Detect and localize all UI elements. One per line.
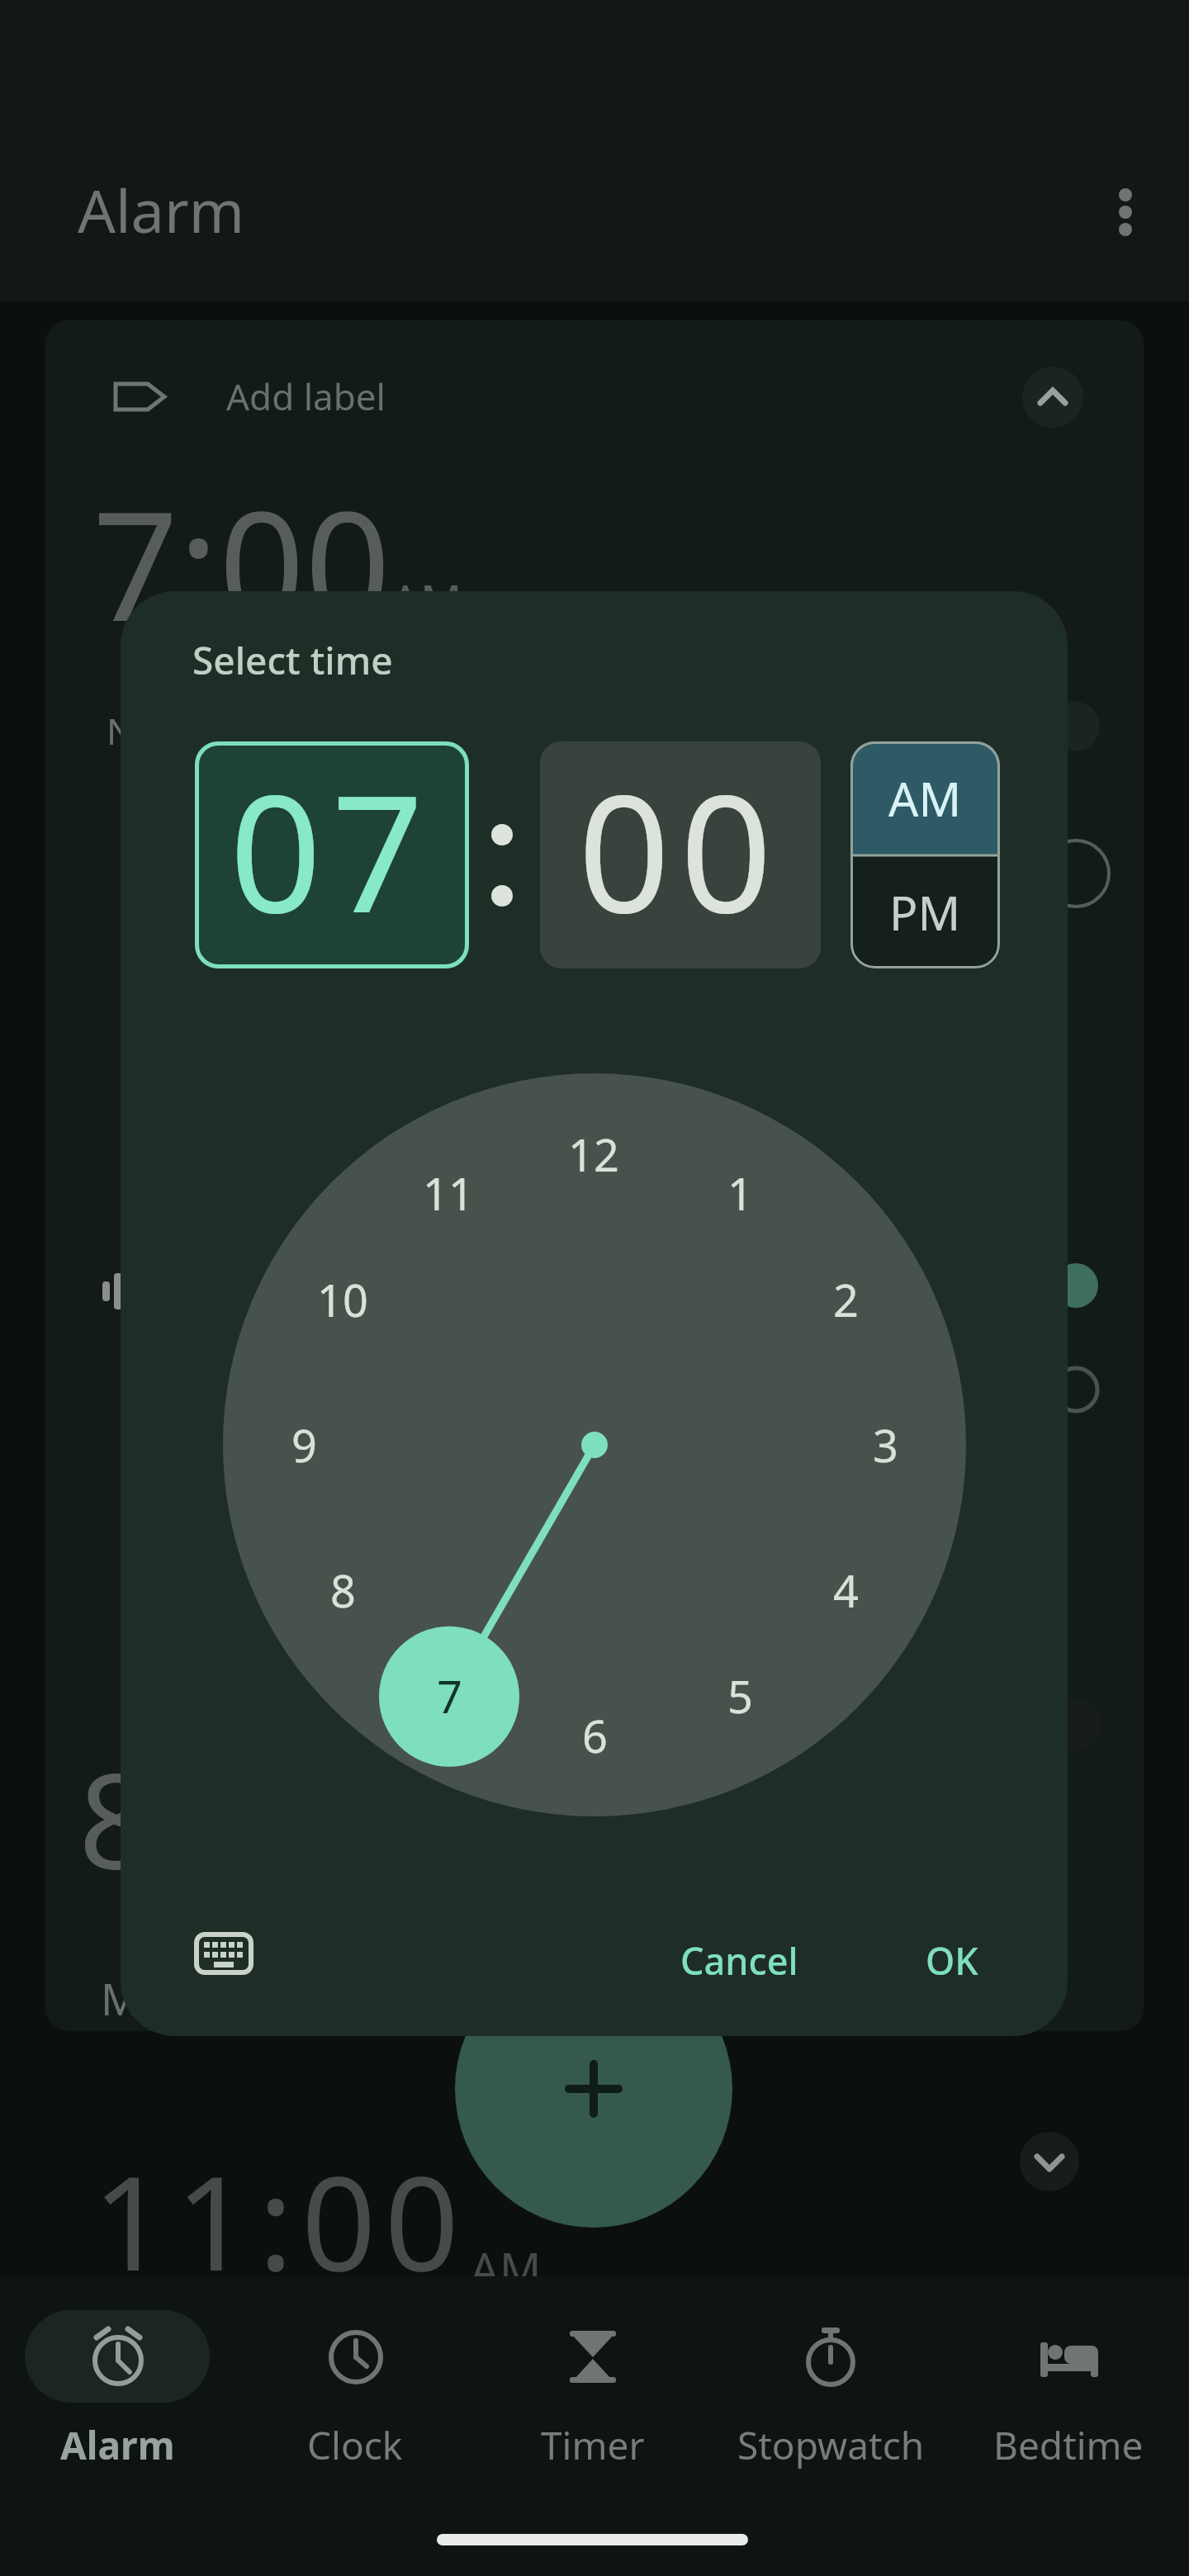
staticText: Clock	[307, 2419, 403, 2469]
button[interactable]	[500, 2304, 685, 2477]
staticText: 11:00	[92, 2131, 467, 2308]
button[interactable]	[263, 2304, 448, 2477]
staticText: 8	[330, 1560, 356, 1621]
staticText: M	[101, 1969, 140, 2019]
button[interactable]	[194, 1932, 253, 1975]
staticText: N	[107, 706, 135, 755]
staticText: 11	[423, 1163, 474, 1224]
button[interactable]	[738, 2304, 923, 2477]
button[interactable]	[455, 1950, 732, 2228]
staticText: 5	[727, 1665, 753, 1726]
staticText: AM	[888, 766, 962, 831]
staticText: Alarm	[60, 2419, 175, 2469]
staticText: 4	[833, 1560, 859, 1621]
staticText: 10	[317, 1269, 368, 1330]
staticText: 00	[578, 741, 783, 960]
button[interactable]: PM	[850, 855, 1000, 968]
staticText: 07	[230, 741, 434, 960]
staticText: Alarm	[78, 169, 245, 244]
button[interactable]: OK	[894, 1919, 1010, 2001]
staticText: 2	[833, 1269, 859, 1330]
staticText: 1	[727, 1163, 753, 1224]
staticText: Bedtime	[993, 2419, 1144, 2469]
button[interactable]: 07	[195, 741, 469, 968]
staticText: Timer	[541, 2419, 645, 2469]
button[interactable]	[976, 2304, 1161, 2477]
staticText: Select time	[192, 634, 393, 686]
staticText: 8	[78, 1727, 153, 1907]
button[interactable]	[1020, 2132, 1079, 2191]
button[interactable]	[1022, 367, 1083, 428]
button[interactable]	[1098, 165, 1153, 256]
staticText: 7	[437, 1665, 462, 1726]
button[interactable]	[113, 363, 526, 429]
staticText: AM	[470, 2237, 542, 2287]
staticText: PM	[889, 880, 961, 945]
staticText: Stopwatch	[737, 2419, 925, 2469]
staticText: Cancel	[680, 1935, 798, 1986]
button[interactable]: AM	[850, 741, 1000, 855]
staticText: 12	[568, 1124, 619, 1185]
staticText: 9	[291, 1414, 317, 1475]
staticText: 6	[582, 1705, 608, 1766]
staticText: OK	[926, 1935, 978, 1986]
staticText: 3	[873, 1414, 898, 1475]
staticText: AM	[391, 570, 462, 619]
button[interactable]	[25, 2310, 210, 2403]
button[interactable]: Cancel	[665, 1919, 813, 2001]
staticText: Add label	[226, 372, 386, 421]
staticText: 7:00	[92, 460, 391, 665]
button[interactable]: 00	[540, 741, 821, 968]
